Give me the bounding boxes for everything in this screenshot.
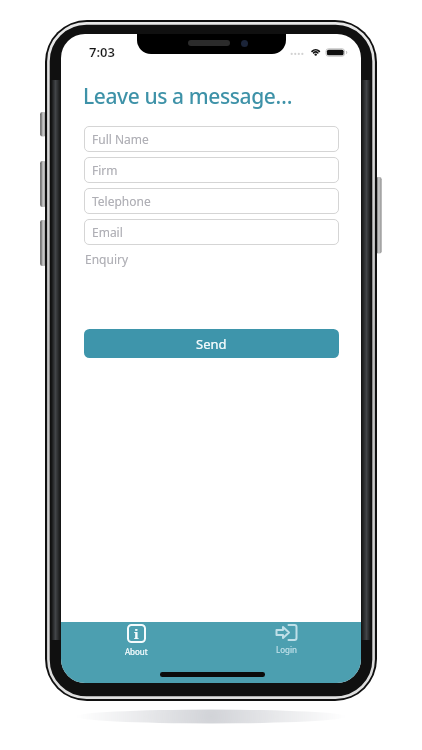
staticText: Telephone <box>92 193 151 209</box>
staticText: Enquiry <box>85 251 129 267</box>
button[interactable]: i <box>108 624 164 666</box>
staticText: Send <box>196 335 227 353</box>
button[interactable]: Full Name <box>84 126 339 152</box>
staticText: Firm <box>92 162 118 178</box>
button[interactable]: Send <box>84 329 339 358</box>
staticText: About <box>125 646 148 657</box>
staticText: i <box>134 625 139 643</box>
button[interactable]: Login <box>258 624 314 666</box>
button[interactable]: Telephone <box>84 188 339 214</box>
staticText: Full Name <box>92 131 149 147</box>
button[interactable]: Email <box>84 219 339 245</box>
staticText: Login <box>276 644 297 655</box>
staticText: 7:03 <box>89 43 115 61</box>
button[interactable]: Firm <box>84 157 339 183</box>
staticText: Email <box>92 224 123 240</box>
staticText: Leave us a message… <box>83 82 293 111</box>
